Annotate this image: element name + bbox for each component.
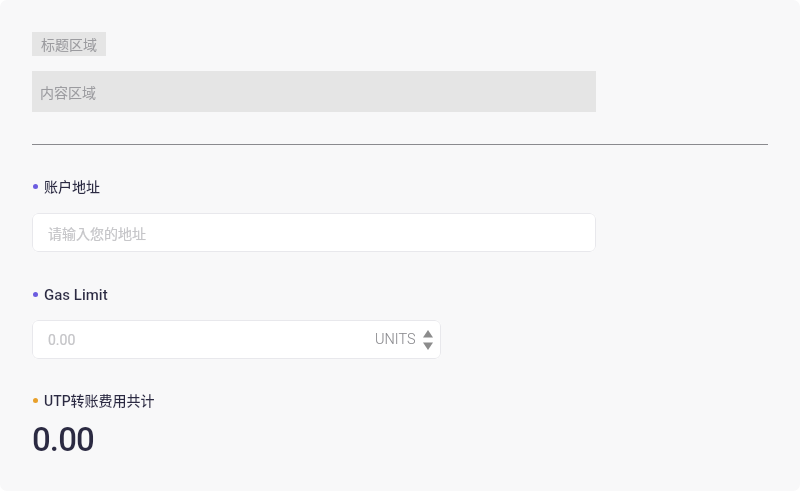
staticText: 0.00	[32, 420, 94, 459]
button[interactable]: 0.00	[32, 320, 441, 359]
button[interactable]: Decrease gas limit	[423, 340, 433, 349]
staticText: Gas Limit	[44, 286, 108, 304]
button[interactable]: Increase gas limit	[423, 330, 433, 340]
staticText: UNITS	[375, 331, 416, 348]
staticText: 内容区域	[40, 82, 96, 102]
staticText: 请输入您的地址	[48, 223, 146, 243]
button[interactable]: 请输入您的地址	[32, 213, 596, 252]
staticText: UTP转账费用共计	[44, 390, 155, 410]
staticText: 账户地址	[44, 176, 100, 196]
staticText: 标题区域	[41, 34, 97, 54]
staticText: 0.00	[48, 332, 76, 348]
